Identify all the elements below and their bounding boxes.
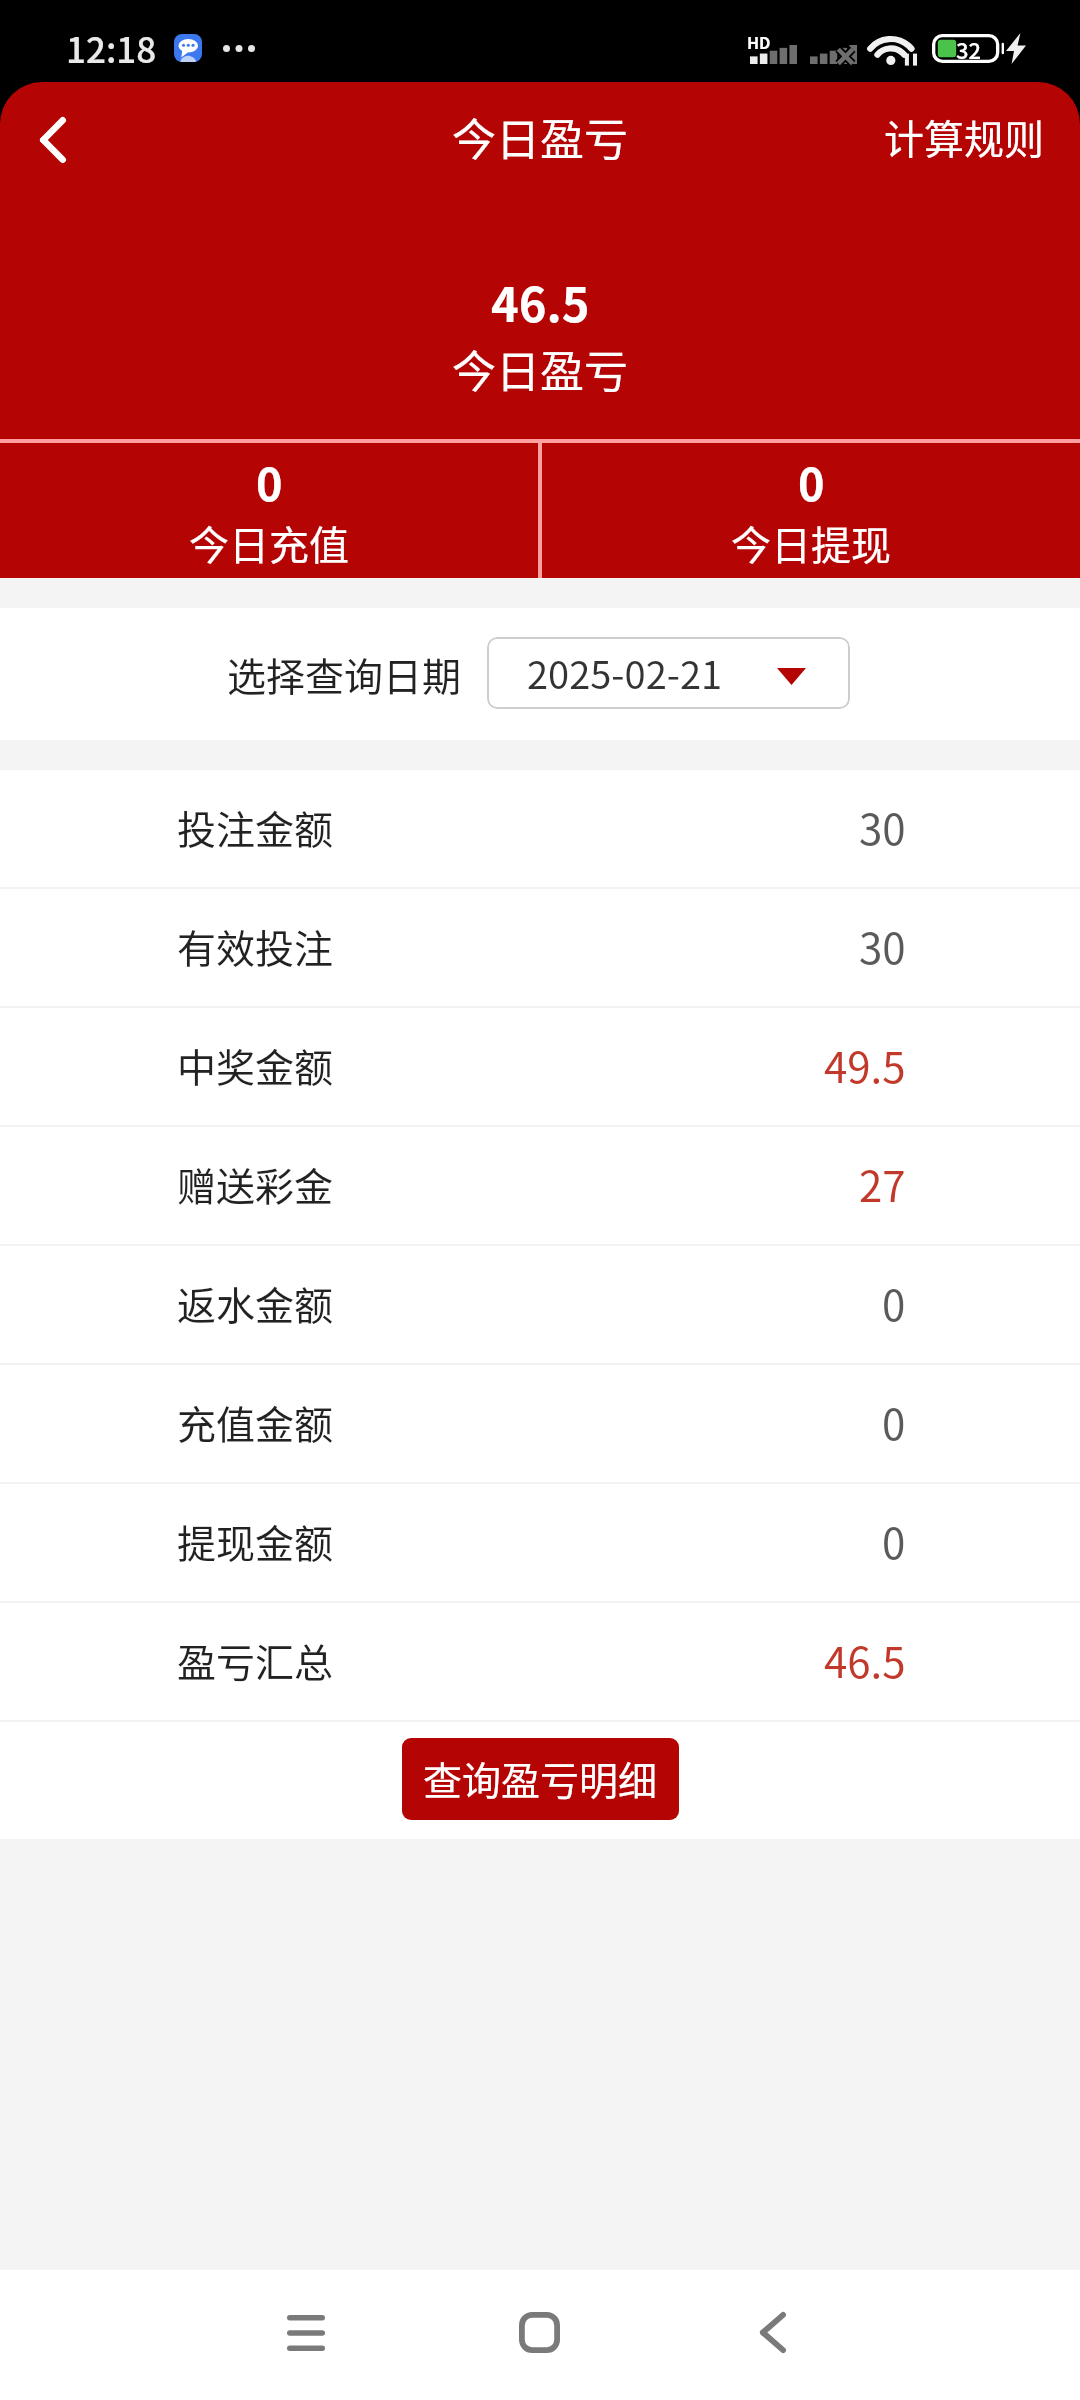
button[interactable]: Back xyxy=(8,95,98,185)
button[interactable]: 投注金额 xyxy=(0,770,1080,887)
staticText: 充值金额 xyxy=(177,1394,334,1450)
staticText: 中奖金额 xyxy=(177,1037,334,1093)
button[interactable]: Recent apps xyxy=(246,2273,366,2393)
button[interactable]: 赠送彩金 xyxy=(0,1127,1080,1244)
staticText: 赠送彩金 xyxy=(177,1156,334,1212)
staticText: 选择查询日期 xyxy=(227,646,462,702)
staticText: HD xyxy=(747,30,771,53)
button[interactable]: 返水金额 xyxy=(0,1246,1080,1363)
staticText: 0 xyxy=(882,1391,906,1452)
staticText: 有效投注 xyxy=(177,918,334,974)
button[interactable]: 查询盈亏明细 xyxy=(402,1738,679,1820)
button[interactable]: 提现金额 xyxy=(0,1484,1080,1601)
staticText: 30 xyxy=(859,915,906,976)
staticText: 12:18 xyxy=(66,22,157,73)
button[interactable]: Back xyxy=(713,2272,833,2392)
button[interactable]: 计算规则 xyxy=(854,82,1080,200)
staticText: 计算规则 xyxy=(884,108,1044,166)
staticText: 提现金额 xyxy=(177,1513,334,1569)
staticText: 今日盈亏 xyxy=(452,105,628,169)
staticText: 46.5 xyxy=(824,1629,906,1690)
button[interactable]: 有效投注 xyxy=(0,889,1080,1006)
staticText: 30 xyxy=(859,796,906,857)
staticText: 0 xyxy=(882,1272,906,1333)
staticText: 投注金额 xyxy=(177,799,334,855)
staticText: 27 xyxy=(859,1153,906,1214)
staticText: 49.5 xyxy=(824,1034,906,1095)
staticText: 查询盈亏明细 xyxy=(423,1750,658,1806)
staticText: 2025-02-21 xyxy=(527,645,723,700)
button[interactable]: Home xyxy=(479,2272,599,2392)
staticText: 返水金额 xyxy=(177,1275,334,1331)
button[interactable]: 充值金额 xyxy=(0,1365,1080,1482)
button[interactable]: 0 xyxy=(0,443,538,578)
button[interactable]: 2025-02-21 xyxy=(487,637,850,709)
staticText: 0 xyxy=(798,449,825,514)
staticText: 32 xyxy=(956,33,982,62)
button[interactable]: 盈亏汇总 xyxy=(0,1603,1080,1720)
staticText: 0 xyxy=(882,1510,906,1571)
button[interactable]: 中奖金额 xyxy=(0,1008,1080,1125)
staticText: 今日充值 xyxy=(189,514,349,572)
staticText: 0 xyxy=(256,449,283,514)
staticText: 今日提现 xyxy=(731,514,891,572)
button[interactable]: 0 xyxy=(542,443,1080,578)
staticText: 盈亏汇总 xyxy=(177,1632,334,1688)
staticText: 46.5 xyxy=(491,267,590,335)
staticText: 今日盈亏 xyxy=(452,337,628,401)
